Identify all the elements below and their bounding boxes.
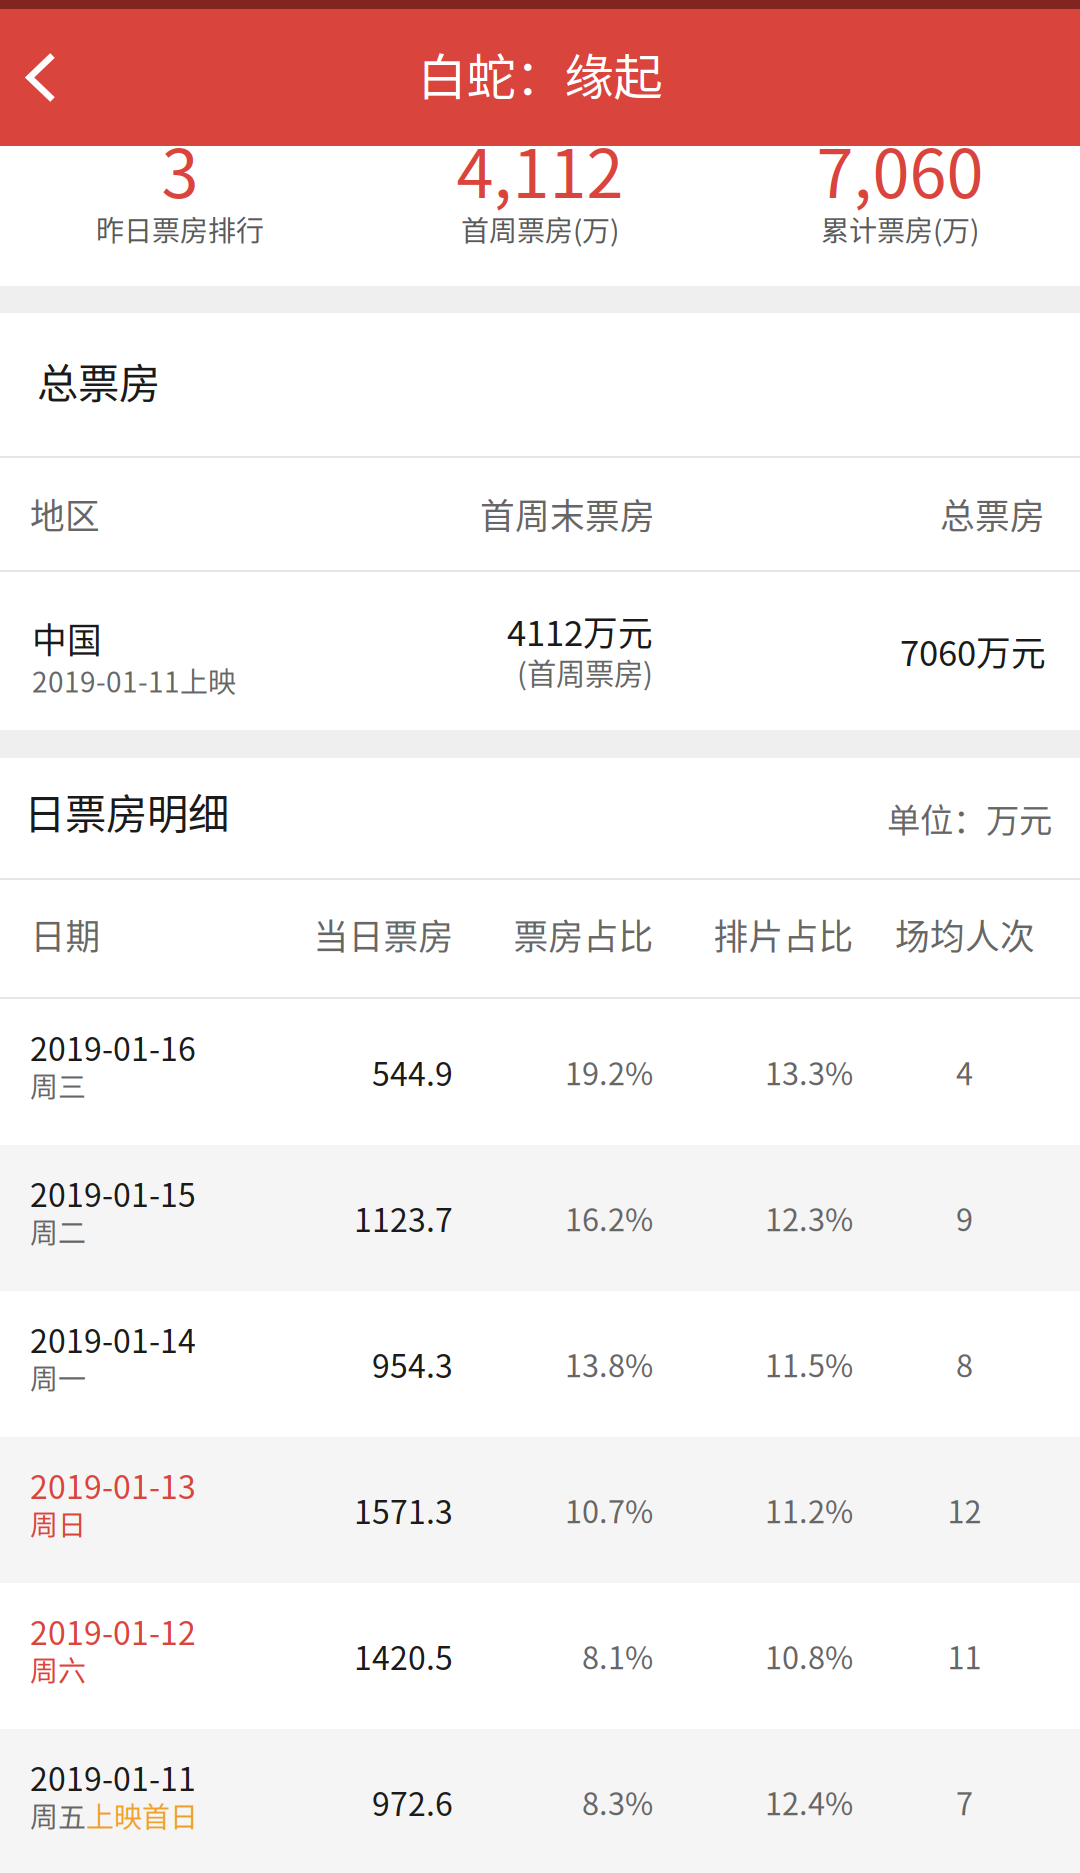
staticText: 当日票房 [313, 909, 453, 960]
staticText: 昨日票房排行 [96, 209, 264, 249]
staticText: 周五 [30, 1795, 86, 1835]
staticText: 1571.3 [354, 1487, 453, 1533]
staticText: 8 [956, 1342, 973, 1386]
staticText: 16.2% [565, 1196, 653, 1240]
button[interactable]: 2019-01-14 [0, 1291, 1080, 1437]
staticText: 10.7% [565, 1488, 653, 1532]
staticText: 地区 [30, 489, 100, 539]
staticText: 首周票房(万) [461, 209, 619, 249]
staticText: 总票房 [940, 489, 1045, 539]
staticText: 2019-01-16 [30, 1024, 196, 1070]
staticText: 上映首日 [86, 1795, 198, 1835]
button[interactable]: 2019-01-12 [0, 1583, 1080, 1729]
staticText: 2019-01-13 [30, 1462, 196, 1508]
staticText: 4112万元 [507, 606, 653, 656]
staticText: 11.2% [765, 1488, 853, 1532]
staticText: 周二 [30, 1211, 86, 1251]
staticText: 7060万元 [900, 626, 1046, 676]
button[interactable]: 2019-01-11 [0, 1729, 1080, 1873]
staticText: 13.3% [765, 1050, 853, 1094]
staticText: 白蛇：缘起 [417, 38, 662, 109]
staticText: 场均人次 [895, 909, 1035, 960]
staticText: 7 [956, 1780, 973, 1824]
staticText: 2019-01-12 [30, 1608, 196, 1654]
staticText: 8.3% [582, 1780, 653, 1824]
staticText: 周日 [30, 1503, 86, 1543]
staticText: 3 [161, 121, 198, 217]
staticText: 19.2% [565, 1050, 653, 1094]
staticText: 12 [947, 1488, 981, 1532]
staticText: 日票房明细 [24, 781, 229, 841]
staticText: 1420.5 [354, 1633, 453, 1679]
staticText: 1123.7 [354, 1195, 453, 1241]
staticText: 日期 [30, 909, 100, 960]
staticText: 12.3% [765, 1196, 853, 1240]
staticText: 972.6 [372, 1779, 453, 1825]
staticText: 2019-01-11上映 [32, 660, 236, 700]
staticText: 11 [947, 1634, 981, 1678]
staticText: 544.9 [372, 1049, 453, 1095]
staticText: 8.1% [582, 1634, 653, 1678]
staticText: 10.8% [765, 1634, 853, 1678]
staticText: 总票房 [37, 351, 160, 410]
staticText: 4 [956, 1050, 973, 1094]
staticText: 13.8% [565, 1342, 653, 1386]
staticText: 单位：万元 [887, 794, 1052, 842]
staticText: 票房占比 [513, 909, 653, 960]
button[interactable]: 2019-01-16 [0, 999, 1080, 1145]
staticText: 9 [956, 1196, 973, 1240]
button[interactable]: 2019-01-13 [0, 1437, 1080, 1583]
staticText: 排片占比 [713, 909, 853, 960]
staticText: 周三 [30, 1065, 86, 1105]
staticText: 7,060 [816, 121, 983, 217]
staticText: 周一 [30, 1357, 86, 1397]
staticText: 首周末票房 [480, 489, 655, 539]
staticText: 2019-01-15 [30, 1170, 196, 1216]
staticText: 中国 [32, 613, 102, 663]
staticText: 4,112 [456, 121, 623, 217]
button[interactable]: 2019-01-15 [0, 1145, 1080, 1291]
button[interactable]: 中国 [0, 572, 1080, 730]
button[interactable]: 返回 [0, 9, 124, 146]
staticText: 954.3 [372, 1341, 453, 1387]
staticText: 2019-01-11 [30, 1754, 196, 1800]
staticText: 11.5% [765, 1342, 853, 1386]
staticText: 累计票房(万) [821, 209, 979, 249]
staticText: 周六 [30, 1649, 86, 1689]
staticText: 12.4% [765, 1780, 853, 1824]
staticText: 2019-01-14 [30, 1316, 196, 1362]
staticText: (首周票房) [517, 651, 653, 693]
